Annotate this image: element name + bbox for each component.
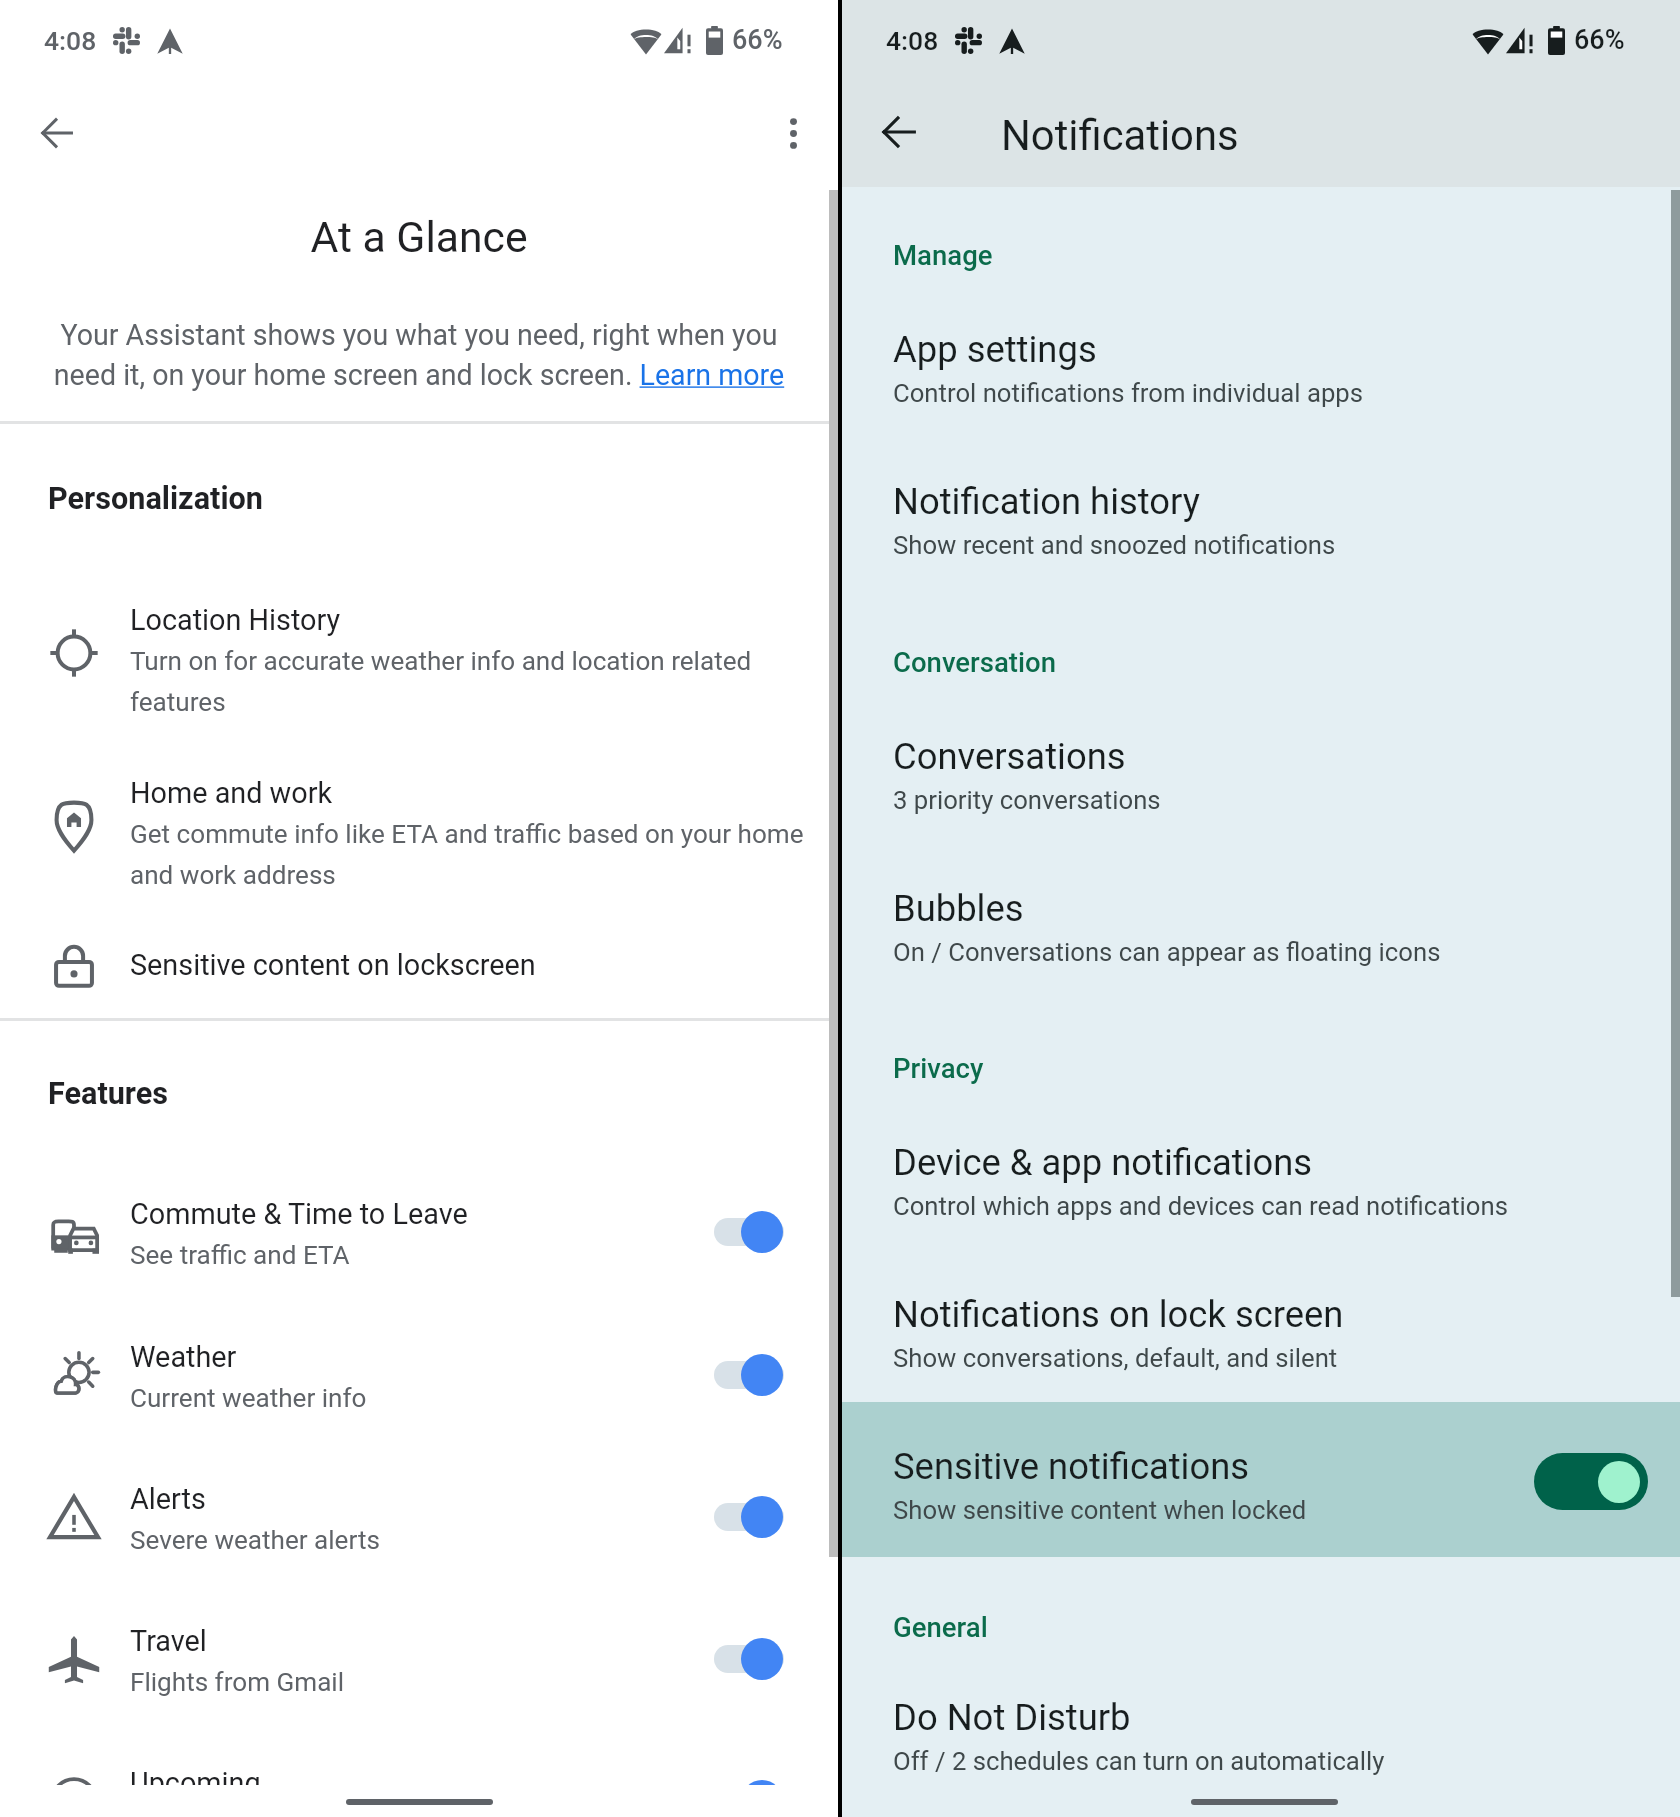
staticText: Alerts: [130, 1482, 206, 1516]
staticText: Current weather info: [130, 1383, 815, 1414]
staticText: Severe weather alerts: [130, 1525, 815, 1556]
staticText: Show sensitive content when locked: [893, 1495, 1307, 1525]
staticText: Sensitive content on lockscreen: [130, 948, 536, 982]
staticText: General: [893, 1611, 988, 1643]
staticText: Conversations: [893, 735, 1126, 778]
staticText: 4:08: [44, 25, 97, 56]
staticText: Notification history: [893, 480, 1200, 523]
button[interactable]: [842, 1116, 1680, 1251]
staticText: 66%: [1574, 24, 1625, 56]
staticText: Commute & Time to Leave: [130, 1197, 468, 1231]
staticText: 4:08: [886, 25, 939, 56]
staticText: Show conversations, default, and silent: [893, 1343, 1338, 1373]
staticText: Location History: [130, 603, 341, 637]
staticText: Conversation: [893, 646, 1057, 678]
button[interactable]: [842, 710, 1680, 845]
button[interactable]: [0, 1319, 838, 1459]
staticText: Get commute info like ETA and traffic ba…: [130, 819, 815, 890]
button[interactable]: Back: [25, 101, 89, 165]
button[interactable]: [0, 1745, 838, 1817]
staticText: Control which apps and devices can read …: [893, 1191, 1508, 1221]
button[interactable]: [842, 1402, 1680, 1557]
staticText: Flights from Gmail: [130, 1667, 815, 1698]
staticText: Show recent and snoozed notifications: [893, 530, 1336, 560]
staticText: Travel: [130, 1624, 207, 1658]
staticText: See traffic and ETA: [130, 1240, 815, 1271]
button[interactable]: Back: [867, 100, 931, 164]
button[interactable]: [842, 1268, 1680, 1403]
button[interactable]: [842, 862, 1680, 997]
staticText: Turn on for accurate weather info and lo…: [130, 646, 815, 717]
staticText: Notifications: [1001, 111, 1239, 160]
button[interactable]: [0, 1176, 838, 1316]
staticText: Device & app notifications: [893, 1141, 1313, 1184]
staticText: Manage: [893, 239, 993, 271]
button[interactable]: [842, 1671, 1680, 1806]
staticText: Control notifications from individual ap…: [893, 378, 1364, 408]
staticText: Off / 2 schedules can turn on automatica…: [893, 1746, 1385, 1776]
button[interactable]: [0, 1461, 838, 1601]
staticText: App settings: [893, 328, 1097, 371]
button[interactable]: More options: [761, 101, 825, 165]
button[interactable]: [0, 755, 838, 895]
staticText: Your Assistant shows you what you need, …: [49, 318, 789, 392]
staticText: On / Conversations can appear as floatin…: [893, 937, 1441, 967]
button[interactable]: [0, 582, 838, 722]
staticText: Weather: [130, 1340, 237, 1374]
staticText: 66%: [732, 24, 783, 56]
staticText: 3 priority conversations: [893, 785, 1161, 815]
staticText: Sensitive notifications: [893, 1445, 1250, 1488]
staticText: Do Not Disturb: [893, 1696, 1131, 1739]
staticText: Home and work: [130, 776, 332, 810]
button[interactable]: [842, 303, 1680, 438]
staticText: At a Glance: [0, 212, 838, 262]
staticText: Features: [48, 1076, 169, 1112]
staticText: Bubbles: [893, 887, 1024, 930]
button[interactable]: [0, 927, 838, 1007]
staticText: Upcoming: [130, 1766, 261, 1800]
staticText: Personalization: [48, 481, 263, 517]
staticText: Privacy: [893, 1052, 984, 1084]
button[interactable]: [0, 1603, 838, 1743]
button[interactable]: [842, 455, 1680, 590]
staticText: Notifications on lock screen: [893, 1293, 1344, 1336]
